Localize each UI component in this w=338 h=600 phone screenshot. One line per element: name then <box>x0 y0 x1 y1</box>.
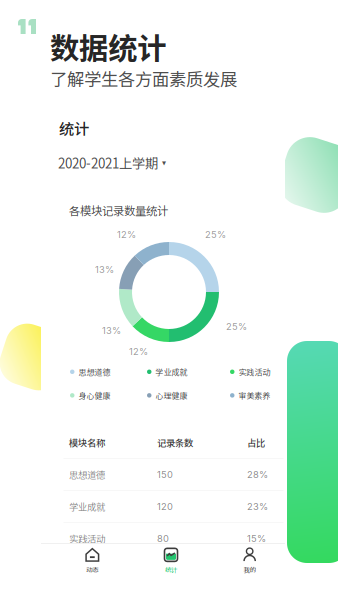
button[interactable]: 2020-2021上学期 <box>58 153 198 172</box>
staticText: 学业成就 <box>69 500 105 513</box>
staticText: 身心健康 <box>78 390 110 401</box>
staticText: 数据统计 <box>50 25 166 67</box>
staticText: 28% <box>247 469 268 480</box>
staticText: 13% <box>102 325 121 336</box>
staticText: 25% <box>205 229 226 240</box>
staticText: 25% <box>226 321 247 332</box>
staticText: 占比 <box>247 436 265 449</box>
staticText: ▾ <box>162 158 166 167</box>
staticText: 各模块记录数量统计 <box>69 202 168 218</box>
staticText: 80 <box>157 533 169 544</box>
staticText: 了解学生各方面素质发展 <box>50 66 237 91</box>
staticText: 13% <box>95 264 114 275</box>
staticText: 动态 <box>86 565 98 574</box>
staticText: 实践活动 <box>69 532 105 545</box>
staticText: 150 <box>157 469 173 480</box>
staticText: 2020-2021上学期 <box>58 153 158 172</box>
staticText: 12% <box>129 346 148 357</box>
staticText: 模块名称 <box>69 436 105 449</box>
staticText: 记录条数 <box>157 436 193 449</box>
button[interactable]: 统计 <box>132 546 210 576</box>
staticText: 120 <box>157 501 173 512</box>
staticText: 我的 <box>244 565 256 574</box>
staticText: 15% <box>247 533 266 544</box>
button[interactable]: 我的 <box>210 546 289 576</box>
staticText: 23% <box>247 501 268 512</box>
staticText: 思想道德 <box>69 468 105 481</box>
staticText: 实践活动 <box>238 366 270 378</box>
staticText: 12% <box>117 229 136 240</box>
staticText: 心理健康 <box>155 390 187 401</box>
staticText: 统计 <box>165 565 177 574</box>
staticText: 统计 <box>59 117 89 139</box>
staticText: 学业成就 <box>155 366 187 378</box>
staticText: 审美素养 <box>238 390 270 401</box>
button[interactable]: 动态 <box>53 546 132 576</box>
staticText: 思想道德 <box>78 366 110 378</box>
